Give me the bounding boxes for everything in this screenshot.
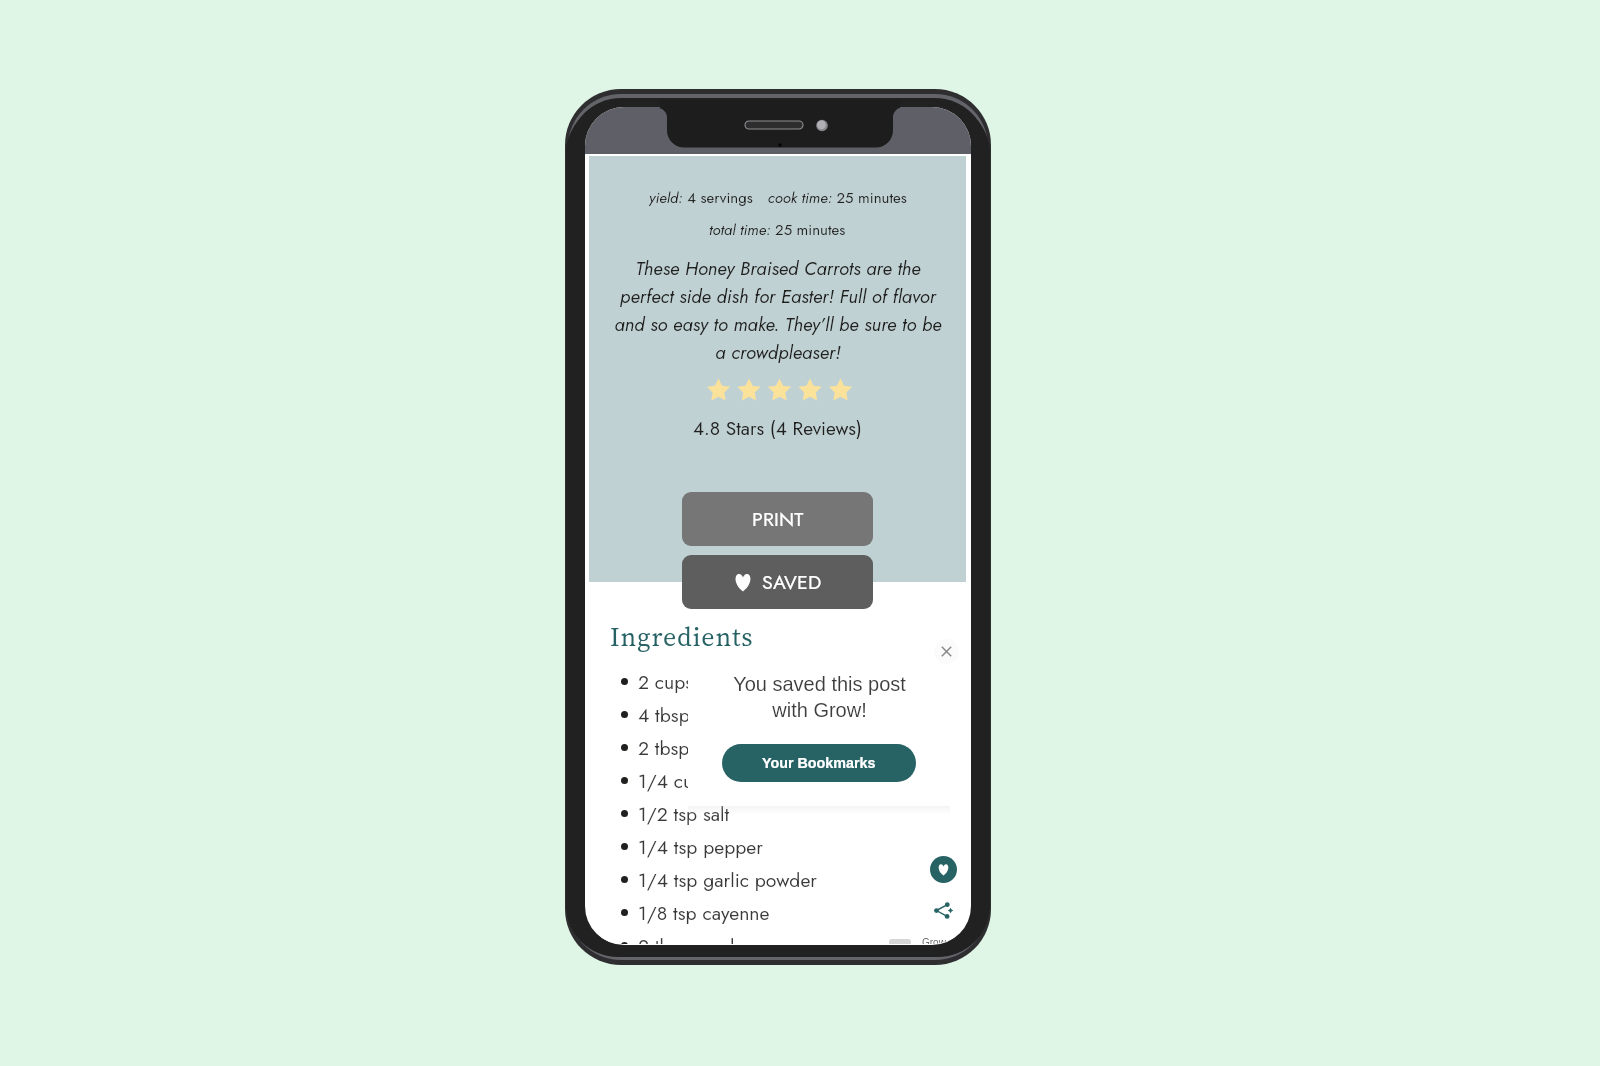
staticText: yield: 4 servings cook time: 25 minutes (649, 187, 907, 209)
button[interactable]: 2 tbsp honey (610, 731, 946, 764)
staticText: 4.8 Stars (4 Reviews) (693, 415, 862, 442)
button[interactable]: Close (934, 639, 959, 664)
button[interactable]: Share (928, 895, 958, 925)
button[interactable]: Your Bookmarks (722, 744, 916, 782)
staticText: 1/4 cup water (638, 767, 754, 795)
button[interactable]: Save (930, 856, 957, 883)
button[interactable]: 1/2 tsp salt (610, 797, 946, 830)
button[interactable]: 2 cups carrots, sliced (610, 665, 946, 698)
button[interactable]: SAVED (682, 555, 873, 609)
staticText: 2 tbsp honey (638, 734, 745, 762)
staticText: Your Bookmarks (762, 755, 876, 771)
staticText: 1/2 tsp salt (638, 800, 730, 828)
button[interactable]: 1/8 tsp cayenne (610, 896, 946, 929)
staticText: PRINT (752, 505, 804, 533)
staticText: 1/8 tsp cayenne (638, 899, 770, 927)
button[interactable]: 1/4 cup water (610, 764, 946, 797)
staticText: 4 tbsp butter (638, 701, 743, 729)
staticText: 1/4 tsp garlic powder (638, 866, 818, 894)
staticText: total time: 25 minutes (709, 219, 846, 241)
staticText: Grow (922, 937, 946, 944)
button[interactable]: 4 tbsp butter (610, 698, 946, 731)
staticText: Ingredients (610, 619, 754, 655)
staticText: 1/4 tsp pepper (638, 833, 763, 861)
staticText: 2 tbsp parsley (638, 932, 753, 944)
staticText: SAVED (762, 568, 822, 596)
button[interactable]: PRINT (682, 492, 873, 546)
button[interactable]: 2 tbsp parsley (610, 929, 946, 944)
staticText: You saved this post with Grow! (733, 673, 906, 721)
staticText: These Honey Braised Carrots are the perf… (614, 255, 942, 366)
staticText: 2 cups carrots, sliced (638, 668, 814, 696)
button[interactable]: 1/4 tsp pepper (610, 830, 946, 863)
button[interactable]: 1/4 tsp garlic powder (610, 863, 946, 896)
